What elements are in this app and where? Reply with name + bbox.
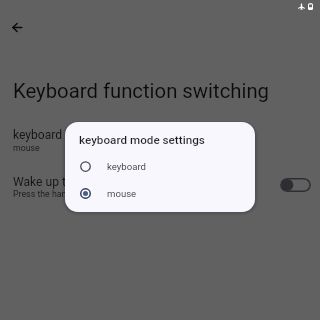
staticText: mouse [13, 143, 40, 153]
staticText: Wake up the keyboard [13, 175, 132, 189]
button[interactable]: mouse [65, 180, 255, 207]
button[interactable]: Back [7, 17, 28, 38]
staticText: keyboard [107, 161, 146, 172]
staticText: Keyboard function switching [13, 79, 270, 103]
button[interactable]: keyboard [65, 153, 255, 180]
button[interactable]: keyboard [0, 126, 320, 152]
staticText: mouse [107, 188, 137, 199]
staticText: keyboard [13, 128, 63, 142]
staticText: Press the handle [13, 189, 79, 199]
button[interactable]: Wake up the keyboard switch [280, 178, 311, 192]
button[interactable]: Wake up the keyboard [0, 172, 320, 198]
staticText: keyboard mode settings [79, 133, 205, 147]
